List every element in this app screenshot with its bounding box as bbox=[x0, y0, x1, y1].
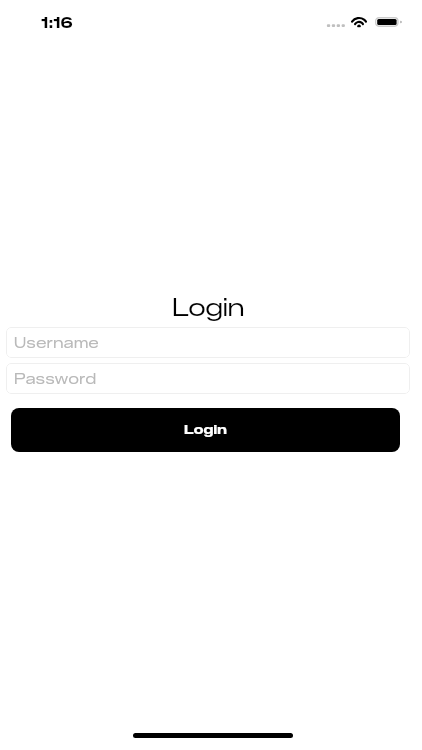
button[interactable]: Username bbox=[6, 327, 410, 358]
staticText: Password bbox=[14, 370, 97, 387]
button[interactable]: Login bbox=[11, 408, 400, 452]
staticText: Username bbox=[14, 334, 100, 351]
staticText: Login bbox=[172, 293, 245, 322]
other: Battery bbox=[375, 16, 402, 28]
other: Wi-Fi bbox=[350, 15, 368, 27]
staticText: 1:16 bbox=[41, 15, 73, 32]
staticText: Login bbox=[184, 422, 227, 438]
other: Cellular signal bbox=[326, 20, 345, 28]
button[interactable]: Password bbox=[6, 363, 410, 394]
